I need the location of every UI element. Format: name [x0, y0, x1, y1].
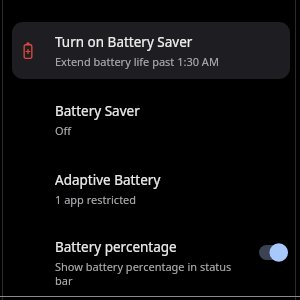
staticText: Battery percentage	[55, 238, 177, 256]
staticText: Off	[55, 123, 72, 138]
button[interactable]: Battery Saver	[0, 79, 300, 148]
button[interactable]: Battery percentage	[0, 217, 300, 296]
staticText: Battery Saver	[55, 102, 140, 120]
staticText: Turn on Battery Saver	[55, 33, 193, 51]
button[interactable]: Adaptive Battery	[0, 148, 300, 217]
staticText: Show battery percentage in status bar	[55, 259, 249, 288]
button[interactable]: Full charge lasts about	[0, 297, 300, 300]
button[interactable]: Battery percentage toggle, on	[259, 245, 287, 260]
staticText: Extend battery life past 1:30 AM	[55, 54, 219, 69]
button[interactable]: Turn on Battery Saver	[12, 22, 290, 79]
staticText: 1 app restricted	[55, 192, 137, 207]
staticText: Adaptive Battery	[55, 171, 161, 189]
